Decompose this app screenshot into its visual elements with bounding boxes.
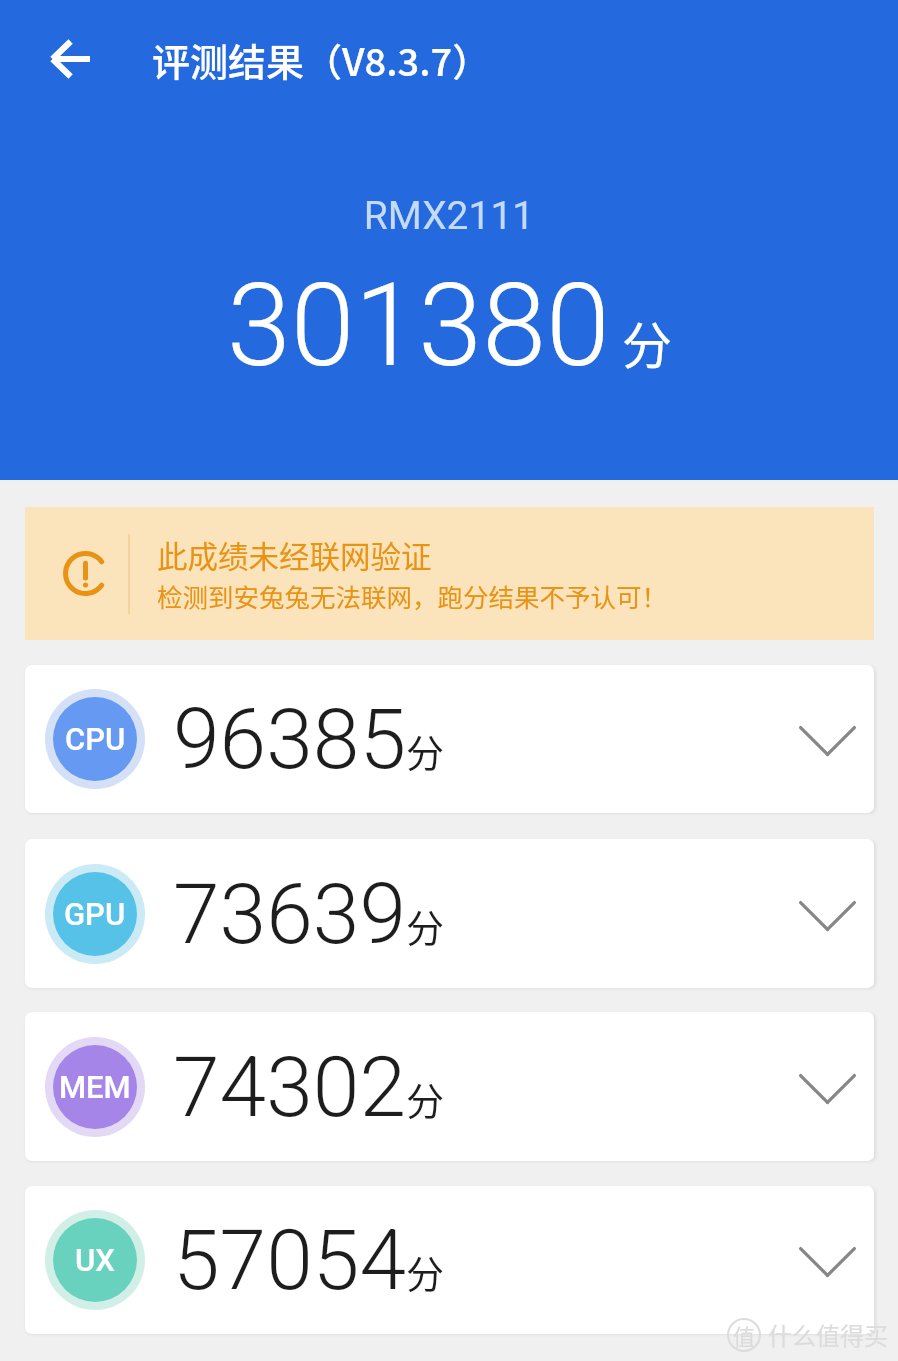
staticText: GPU (64, 896, 126, 932)
staticText: UX (75, 1242, 115, 1278)
staticText: 评测结果（V8.3.7） (152, 32, 491, 87)
button[interactable]: Back (33, 22, 107, 96)
staticText: 57054 (173, 1211, 406, 1309)
staticText: 值 (733, 1319, 756, 1351)
button[interactable]: UX (25, 1186, 874, 1334)
button[interactable]: GPU (25, 839, 874, 988)
staticText: CPU (65, 721, 126, 757)
staticText: RMX2111 (0, 193, 898, 239)
staticText: 分 (622, 306, 672, 378)
staticText: 96385 (173, 690, 406, 788)
staticText: 检测到安兔兔无法联网，跑分结果不予认可！ (157, 577, 668, 614)
staticText: MEM (59, 1069, 131, 1105)
staticText: 73639 (173, 865, 406, 963)
button[interactable]: MEM (25, 1012, 874, 1161)
staticText: 分 (406, 1071, 445, 1126)
staticText: 分 (406, 723, 445, 778)
staticText: 74302 (173, 1038, 406, 1136)
button[interactable]: CPU (25, 665, 874, 813)
button[interactable]: 此成绩未经联网验证 (25, 507, 874, 640)
staticText: 什么值得买 (768, 1317, 888, 1352)
staticText: 301380 (227, 258, 610, 393)
staticText: 分 (406, 1244, 445, 1299)
staticText: 此成绩未经联网验证 (157, 533, 432, 577)
staticText: 分 (406, 898, 445, 953)
